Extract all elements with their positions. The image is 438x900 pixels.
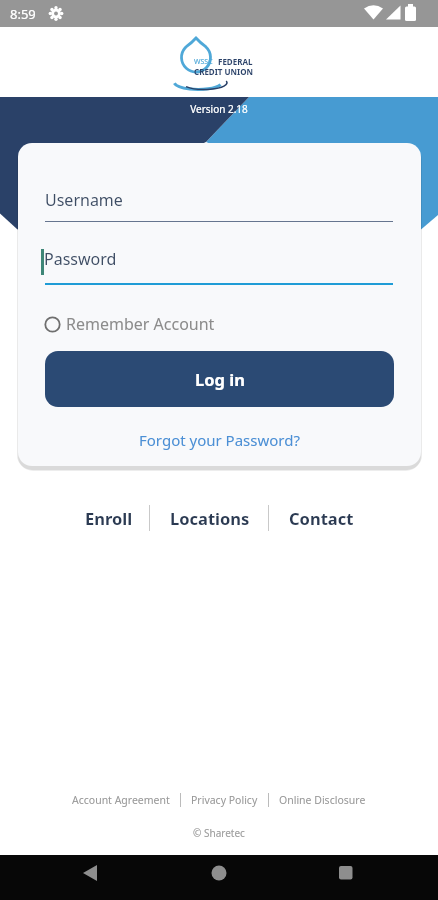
staticText: Version 2.18: [0, 102, 438, 116]
button[interactable]: Log in: [45, 351, 394, 407]
button[interactable]: Account Agreement: [72, 793, 170, 807]
button[interactable]: Forgot your Password?: [139, 430, 300, 450]
staticText: Password: [44, 248, 117, 270]
staticText: FEDERAL: [218, 56, 253, 67]
button[interactable]: Remember Account: [44, 313, 215, 335]
button[interactable]: Enroll: [85, 507, 133, 529]
button[interactable]: [146, 855, 292, 900]
staticText: Username: [45, 189, 123, 211]
button[interactable]: Privacy Policy: [191, 793, 258, 807]
button[interactable]: [292, 855, 438, 900]
button[interactable]: Online Disclosure: [279, 793, 366, 807]
staticText: © Sharetec: [0, 826, 438, 840]
staticText: WSSC: [194, 57, 213, 67]
button[interactable]: [0, 855, 146, 900]
staticText: 8:59: [10, 5, 36, 23]
button[interactable]: Contact: [289, 507, 354, 529]
staticText: Log in: [195, 368, 245, 390]
staticText: CREDIT UNION: [194, 66, 254, 77]
staticText: Remember Account: [66, 313, 215, 335]
button[interactable]: Locations: [170, 507, 250, 529]
